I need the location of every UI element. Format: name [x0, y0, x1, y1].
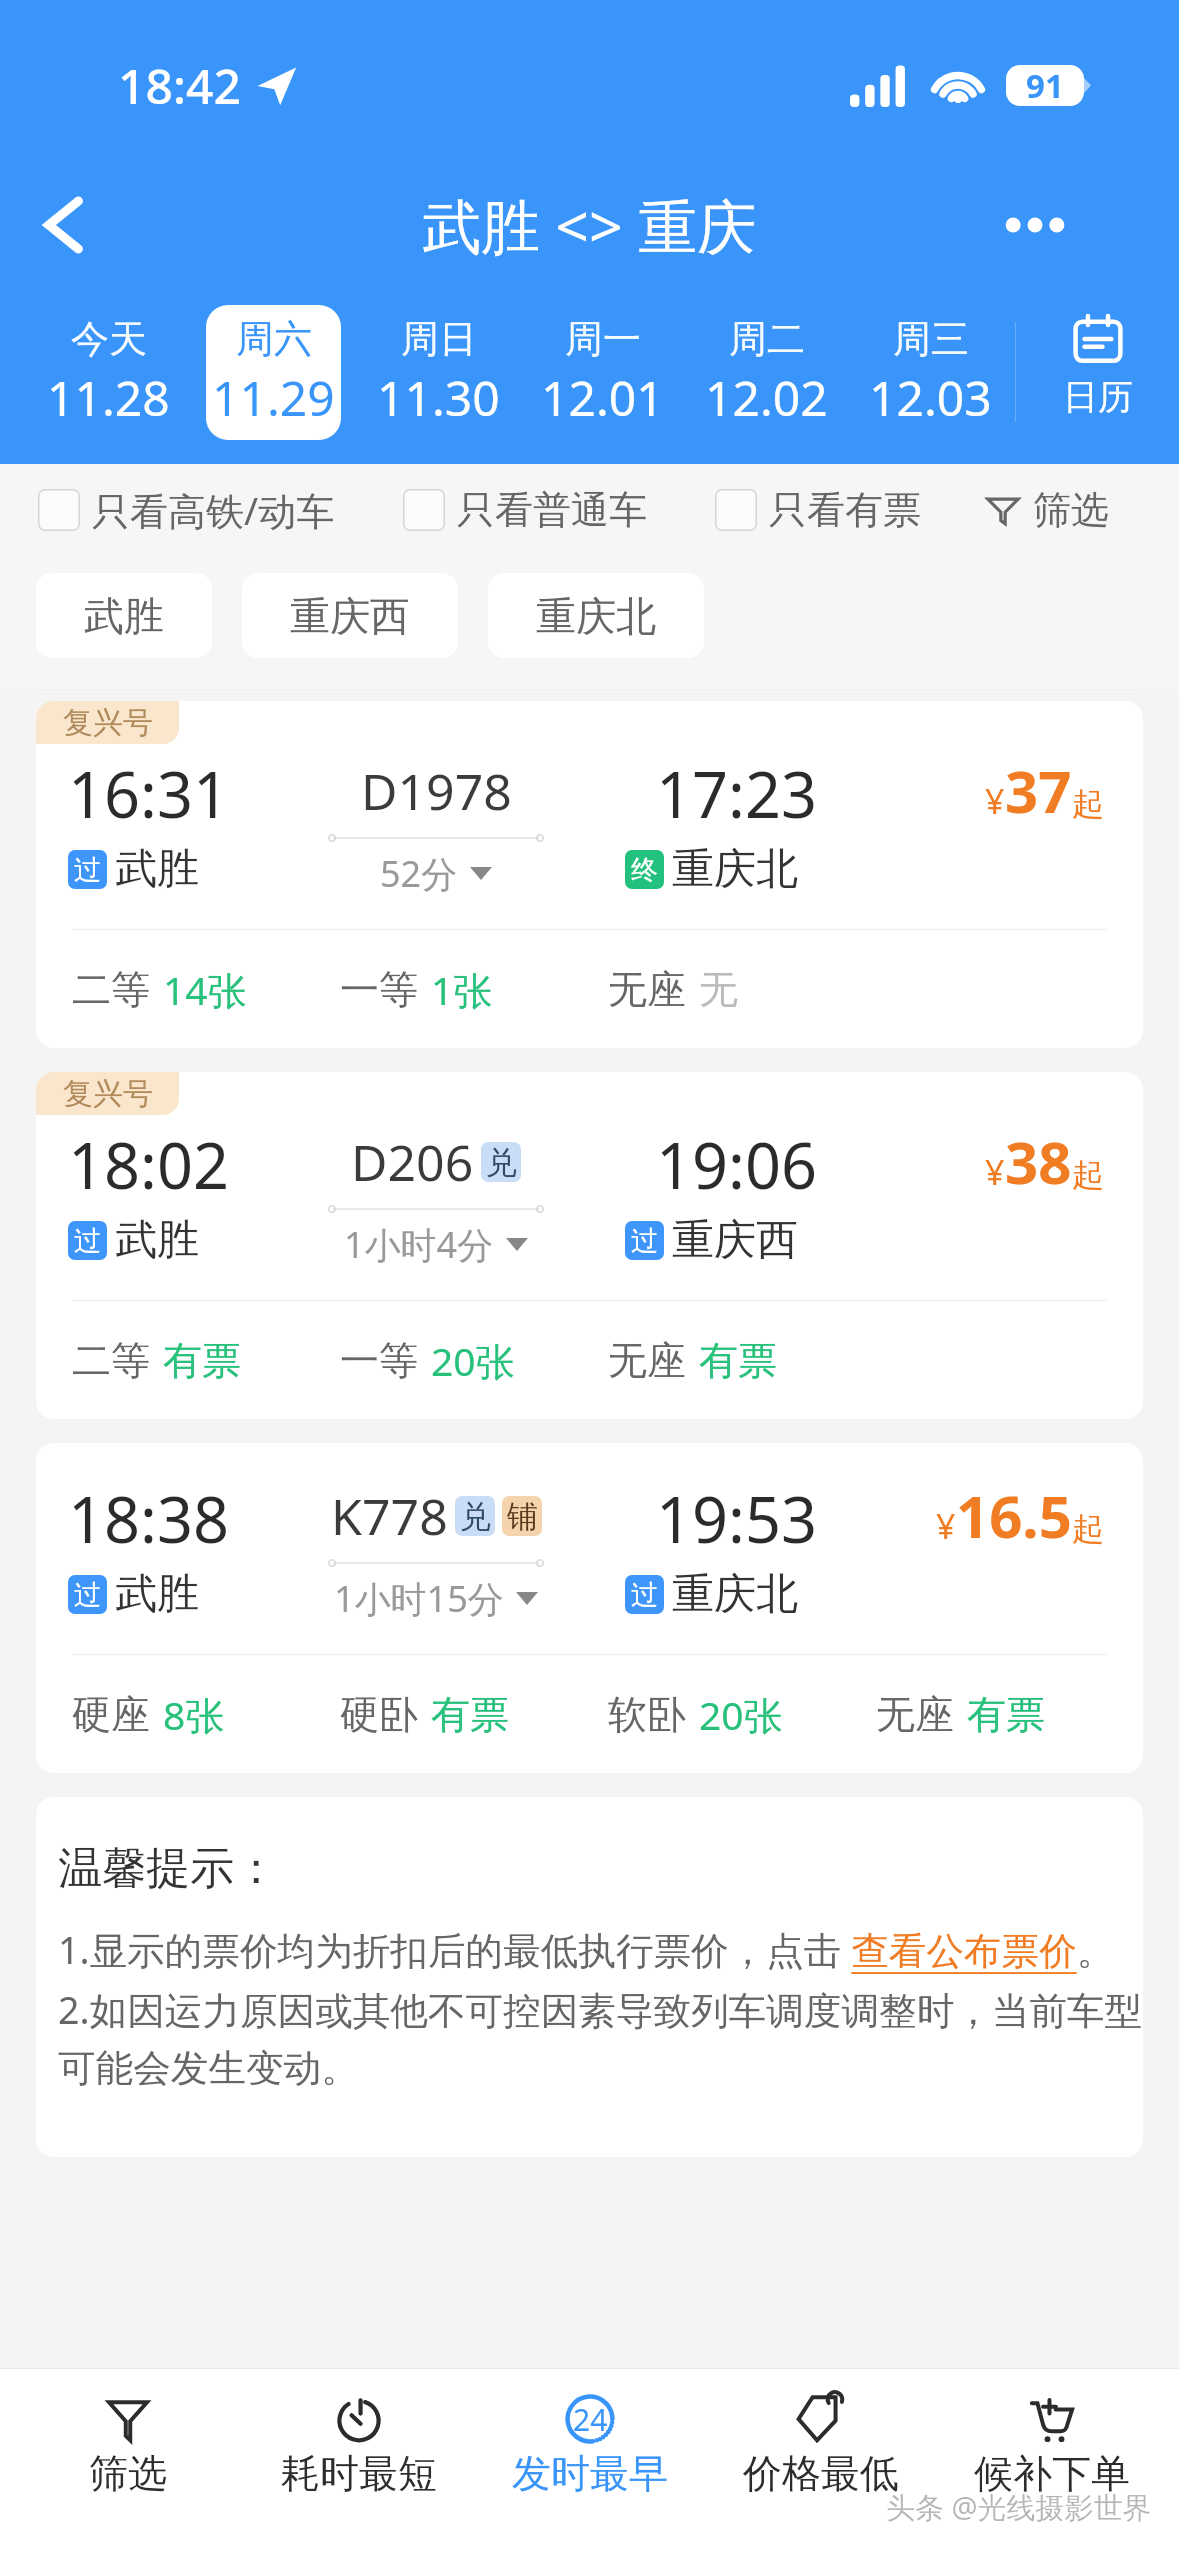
staticText: 52分 — [380, 849, 458, 898]
staticText: 兑 — [460, 1497, 491, 1536]
staticText: 只看高铁/动车 — [92, 484, 335, 536]
staticText: 武胜 — [84, 591, 164, 641]
staticText: 武胜 — [115, 1214, 199, 1267]
staticText: 38 — [1005, 1122, 1072, 1201]
staticText: 过 — [74, 1224, 101, 1258]
staticText: 一等 — [340, 965, 418, 1014]
staticText: D1978 — [361, 757, 512, 825]
staticText: 过 — [631, 1224, 658, 1258]
staticText: 1张 — [431, 963, 493, 1016]
staticText: 无座 — [876, 1690, 954, 1739]
staticText: 起 — [1072, 784, 1104, 824]
button[interactable]: 只看普通车 — [403, 486, 647, 534]
staticText: 过 — [74, 1578, 101, 1612]
staticText: 24 — [573, 2399, 608, 2440]
button[interactable]: 复兴号 — [36, 701, 1143, 1048]
staticText: 周日 — [401, 315, 477, 363]
staticText: 重庆北 — [672, 1568, 798, 1621]
staticText: 一等 — [340, 1336, 418, 1385]
staticText: 武胜 — [115, 843, 199, 896]
staticText: 无座 — [608, 965, 686, 1014]
staticText: 20张 — [699, 1688, 783, 1741]
staticText: 起 — [1072, 1155, 1104, 1195]
staticText: 有票 — [431, 1690, 509, 1739]
staticText: 18:42 — [118, 53, 241, 118]
staticText: 1.显示的票价均为折扣后的最低执行票价，点击 查看公布票价。 2.如因运力原因或… — [58, 1924, 1143, 2092]
staticText: ¥ — [985, 1149, 1005, 1195]
button[interactable]: 周三 — [863, 305, 997, 440]
staticText: ¥ — [985, 778, 1005, 824]
staticText: 12.01 — [541, 365, 664, 430]
staticText: 过 — [74, 853, 101, 887]
staticText: 有票 — [967, 1690, 1045, 1739]
staticText: K778 — [331, 1482, 448, 1550]
staticText: 19:06 — [656, 1122, 818, 1208]
staticText: 周三 — [893, 315, 969, 363]
button[interactable]: 耗时最短 — [243, 2369, 474, 2556]
staticText: 温馨提示： — [58, 1841, 278, 1896]
staticText: 19:53 — [656, 1476, 818, 1562]
button[interactable]: 周一 — [535, 305, 669, 440]
staticText: 只看普通车 — [457, 486, 647, 534]
button[interactable]: 今天 — [41, 305, 176, 440]
staticText: 日历 — [1063, 375, 1133, 419]
button[interactable]: 筛选 — [985, 486, 1109, 534]
staticText: 筛选 — [1033, 486, 1109, 534]
staticText: 复兴号 — [63, 704, 153, 742]
staticText: 二等 — [72, 965, 150, 1014]
button[interactable]: 价格最低 — [705, 2369, 936, 2556]
button[interactable]: 复兴号 — [36, 1072, 1143, 1419]
staticText: 耗时最短 — [281, 2449, 437, 2498]
staticText: 11.28 — [47, 365, 170, 430]
staticText: 武胜 — [115, 1568, 199, 1621]
staticText: 12.03 — [869, 365, 992, 430]
staticText: 过 — [631, 1578, 658, 1612]
button[interactable]: 重庆北 — [488, 573, 704, 658]
staticText: 无座 — [608, 1336, 686, 1385]
staticText: ¥ — [936, 1503, 956, 1549]
staticText: 硬座 — [72, 1690, 150, 1739]
button[interactable]: 武胜 — [36, 573, 212, 658]
staticText: 候补下单 — [974, 2449, 1130, 2498]
staticText: 周一 — [565, 315, 641, 363]
staticText: 16.5 — [956, 1476, 1072, 1555]
staticText: 硬卧 — [340, 1690, 418, 1739]
staticText: 有票 — [163, 1336, 241, 1385]
staticText: 1小时4分 — [344, 1220, 494, 1269]
staticText: 1小时15分 — [334, 1574, 504, 1623]
staticText: 37 — [1005, 751, 1072, 830]
staticText: 11.29 — [212, 365, 335, 430]
staticText: D206 — [351, 1128, 474, 1196]
button[interactable]: 周日 — [371, 305, 505, 440]
staticText: 有票 — [699, 1336, 777, 1385]
button[interactable]: 只看有票 — [715, 486, 921, 534]
button[interactable]: 周二 — [699, 305, 833, 440]
staticText: 重庆西 — [290, 591, 410, 641]
staticText: 重庆北 — [672, 843, 798, 896]
staticText: 只看有票 — [769, 486, 921, 534]
button[interactable]: 重庆西 — [242, 573, 458, 658]
staticText: 铺 — [507, 1497, 538, 1536]
button[interactable]: Calendar — [1016, 301, 1179, 443]
staticText: 20张 — [431, 1334, 515, 1387]
button[interactable]: 24 — [474, 2369, 705, 2556]
staticText: 兑 — [486, 1143, 517, 1182]
button[interactable]: 只看高铁/动车 — [38, 484, 335, 536]
staticText: 复兴号 — [63, 1075, 153, 1113]
button[interactable]: More options — [993, 183, 1077, 267]
staticText: 筛选 — [89, 2449, 167, 2498]
staticText: 11.30 — [377, 365, 500, 430]
staticText: 重庆北 — [536, 591, 656, 641]
button[interactable]: 周六 — [206, 305, 341, 440]
button[interactable]: 候补下单 — [936, 2369, 1167, 2556]
staticText: 头条 @光线摄影世界 — [886, 2487, 1152, 2527]
staticText: 周六 — [236, 315, 312, 363]
staticText: 武胜 <> 重庆 — [422, 185, 757, 266]
staticText: 起 — [1072, 1509, 1104, 1549]
staticText: 重庆西 — [672, 1214, 798, 1267]
staticText: 17:23 — [656, 751, 818, 837]
button[interactable]: 18:38 — [36, 1443, 1143, 1773]
staticText: 周二 — [729, 315, 805, 363]
button[interactable]: 筛选 — [12, 2369, 243, 2556]
button[interactable]: Back — [24, 185, 104, 265]
